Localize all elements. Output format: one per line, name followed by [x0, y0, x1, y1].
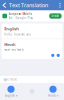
staticText: Type here [3, 78, 17, 81]
staticText: Ad · Google Play [9, 16, 33, 20]
staticText: European Mobile [9, 12, 33, 16]
staticText: Text Translation [9, 2, 48, 9]
button[interactable]: Swap languages [29, 89, 34, 94]
staticText: Hindi ▾ [48, 94, 58, 97]
button[interactable]: English ▾ [2, 86, 20, 97]
button[interactable]: Back [0, 0, 9, 10]
staticText: नमस्ते आप कैसे हैं [4, 48, 23, 52]
staticText: English [4, 26, 19, 31]
button[interactable]: Install [49, 13, 62, 19]
staticText: Hindi [4, 42, 15, 47]
button[interactable]: Copy [51, 54, 54, 57]
staticText: Install [51, 14, 59, 18]
button[interactable]: More options [56, 0, 64, 10]
button[interactable]: Hindi ▾ [44, 86, 62, 97]
staticText: English ▾ [5, 94, 17, 97]
staticText: hello, how are you [4, 33, 31, 36]
button[interactable]: Speak [57, 54, 60, 57]
